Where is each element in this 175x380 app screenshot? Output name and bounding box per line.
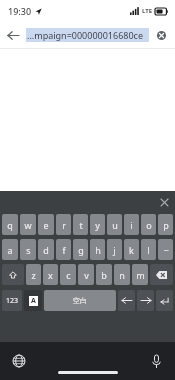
button[interactable]: Clear [149, 23, 173, 47]
staticText: c [66, 269, 71, 281]
button[interactable]: z [26, 264, 41, 285]
button[interactable]: h [90, 239, 105, 260]
button[interactable]: u [107, 214, 122, 235]
staticText: d [43, 244, 49, 256]
staticText: b [101, 269, 107, 281]
button[interactable]: r [56, 214, 71, 235]
button[interactable]: c [60, 264, 76, 285]
staticText: l [147, 244, 150, 256]
button[interactable]: q [2, 214, 18, 235]
button[interactable]: Key [156, 290, 173, 311]
button[interactable]: Change language [9, 351, 29, 371]
button[interactable]: Back [0, 22, 26, 48]
staticText: h [95, 244, 101, 256]
button[interactable]: Close keyboard [157, 195, 171, 209]
button[interactable]: j [107, 239, 122, 260]
button[interactable]: a [2, 239, 18, 260]
staticText: r [62, 219, 66, 231]
button[interactable]: i [124, 214, 139, 235]
button[interactable]: y [90, 214, 105, 235]
staticText: a [7, 244, 13, 256]
button[interactable]: Key [150, 264, 173, 285]
button[interactable]: f [56, 239, 71, 260]
button[interactable]: Key [2, 264, 24, 285]
staticText: k [129, 244, 134, 256]
staticText: − [163, 244, 169, 256]
button[interactable]: d [38, 239, 54, 260]
button[interactable]: w [20, 214, 36, 235]
button[interactable]: Key [24, 290, 42, 311]
staticText: x [48, 269, 53, 281]
staticText: y [95, 219, 100, 231]
staticText: f [62, 244, 66, 256]
staticText: g [78, 244, 84, 256]
staticText: v [84, 269, 89, 281]
staticText: s [26, 244, 31, 256]
button[interactable]: v [78, 264, 94, 285]
staticText: u [112, 219, 118, 231]
button[interactable]: s [20, 239, 36, 260]
button[interactable]: x [43, 264, 58, 285]
staticText: 19:30 [8, 5, 32, 17]
button[interactable]: Key [118, 290, 135, 311]
staticText: LTE [142, 7, 153, 15]
staticText: p [163, 219, 169, 231]
button[interactable]: m [132, 264, 148, 285]
button[interactable]: n [114, 264, 130, 285]
button[interactable]: t [73, 214, 88, 235]
staticText: q [7, 219, 13, 231]
staticText: ...mpaign=000000016680cea3 [27, 29, 148, 41]
staticText: 空白 [73, 296, 87, 305]
staticText: 123 [6, 296, 19, 306]
button[interactable]: o [141, 214, 156, 235]
button[interactable]: p [158, 214, 173, 235]
button[interactable]: Key [2, 290, 22, 311]
button[interactable]: Voice input [146, 351, 166, 371]
button[interactable]: k [124, 239, 139, 260]
staticText: A [31, 296, 36, 306]
staticText: w [24, 219, 32, 231]
button[interactable]: − [158, 239, 173, 260]
button[interactable]: 空白 [44, 290, 116, 311]
button[interactable]: g [73, 239, 88, 260]
staticText: m [136, 269, 145, 281]
button[interactable]: l [141, 239, 156, 260]
staticText: i [130, 219, 133, 231]
button[interactable]: b [96, 264, 112, 285]
button[interactable]: Key [137, 290, 154, 311]
staticText: e [43, 219, 49, 231]
staticText: t [79, 219, 83, 231]
button[interactable]: e [38, 214, 54, 235]
button[interactable]: ...mpaign=000000016680cea3 [26, 28, 149, 42]
staticText: o [146, 219, 152, 231]
staticText: j [113, 244, 116, 256]
staticText: z [31, 269, 36, 281]
staticText: n [119, 269, 125, 281]
